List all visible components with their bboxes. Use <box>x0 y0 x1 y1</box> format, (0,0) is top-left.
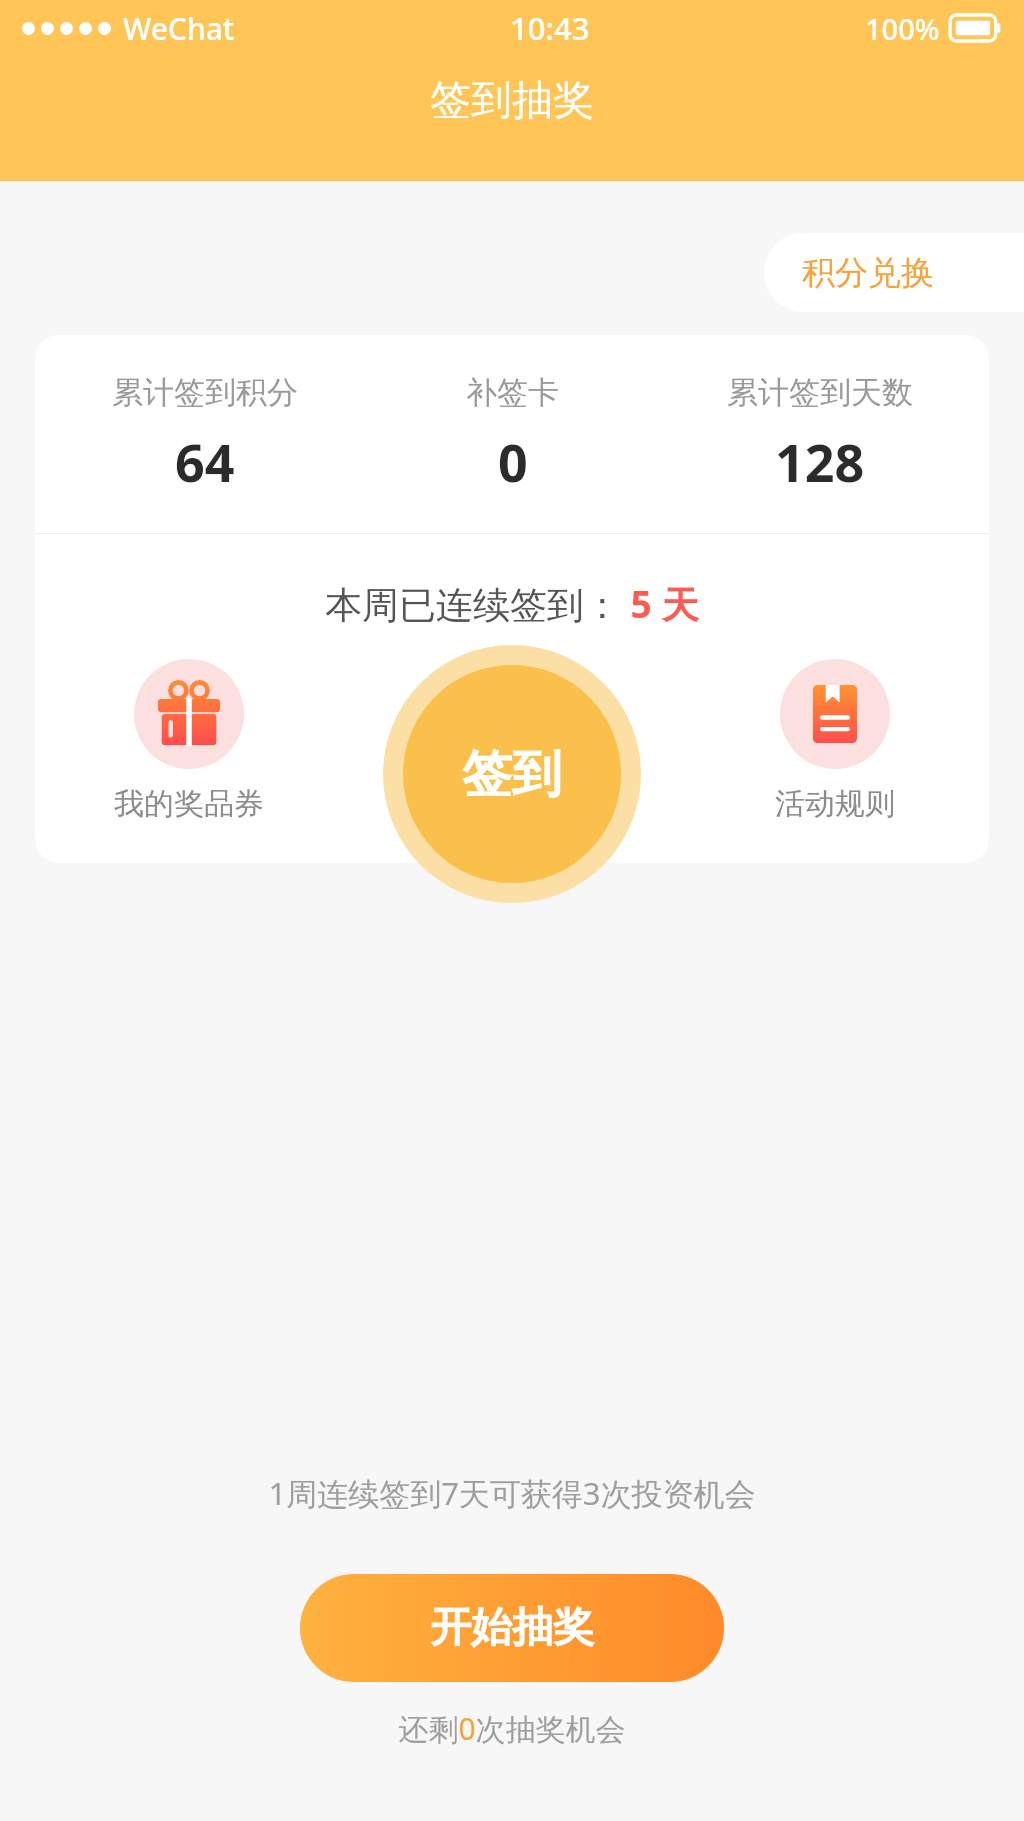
button[interactable]: 累计签到积分 <box>35 373 374 497</box>
staticText: 签到抽奖 <box>430 75 594 127</box>
staticText: 补签卡 <box>466 373 559 412</box>
staticText: 1周连续签到7天可获得3次投资机会 <box>0 1472 1024 1514</box>
staticText: 开始抽奖 <box>430 1602 594 1654</box>
other: My coupons <box>158 683 220 745</box>
button[interactable]: 开始抽奖 <box>300 1574 724 1682</box>
staticText: 64 <box>175 426 235 497</box>
button[interactable]: 签到 <box>383 645 641 903</box>
button[interactable]: 积分兑换 <box>764 233 1024 312</box>
staticText: 活动规则 <box>775 785 895 823</box>
staticText: 签到 <box>462 743 562 806</box>
staticText: 128 <box>775 426 865 497</box>
staticText: 还剩0次抽奖机会 <box>0 1708 1024 1749</box>
staticText: 累计签到天数 <box>727 373 913 412</box>
staticText: 我的奖品券 <box>114 785 264 823</box>
staticText: 本周已连续签到： 5 天 <box>325 578 699 629</box>
button[interactable]: My coupons <box>35 659 342 823</box>
staticText: WeChat <box>123 8 235 49</box>
other: Activity rules <box>806 685 864 743</box>
staticText: 100% <box>865 9 940 48</box>
staticText: 积分兑换 <box>802 252 934 294</box>
button[interactable]: 累计签到天数 <box>651 373 989 497</box>
staticText: 10:43 <box>510 7 590 49</box>
staticText: 累计签到积分 <box>112 373 298 412</box>
button[interactable]: Activity rules <box>681 659 989 823</box>
staticText: 0 <box>498 426 528 497</box>
button[interactable]: 补签卡 <box>374 373 651 497</box>
